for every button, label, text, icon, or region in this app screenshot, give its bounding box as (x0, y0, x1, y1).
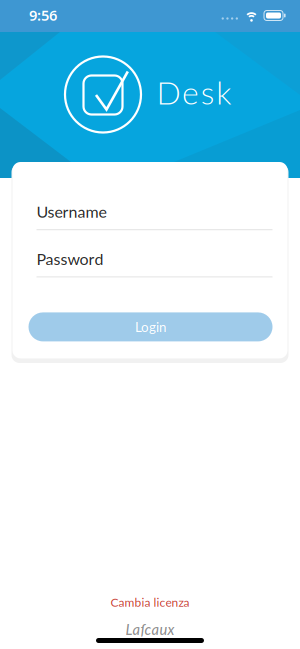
staticText: Password (36, 249, 103, 268)
staticText: Cambia licenza (110, 595, 189, 609)
staticText: Desk (156, 73, 231, 111)
staticText: Laſcaux (125, 620, 174, 638)
staticText: 9:56 (29, 5, 57, 25)
button[interactable]: Password (12, 249, 287, 277)
staticText: Username (36, 202, 106, 221)
button[interactable]: Login (28, 312, 272, 341)
button[interactable]: Cambia licenza (110, 595, 189, 609)
button[interactable]: Username (12, 202, 287, 230)
staticText: Login (135, 319, 166, 335)
